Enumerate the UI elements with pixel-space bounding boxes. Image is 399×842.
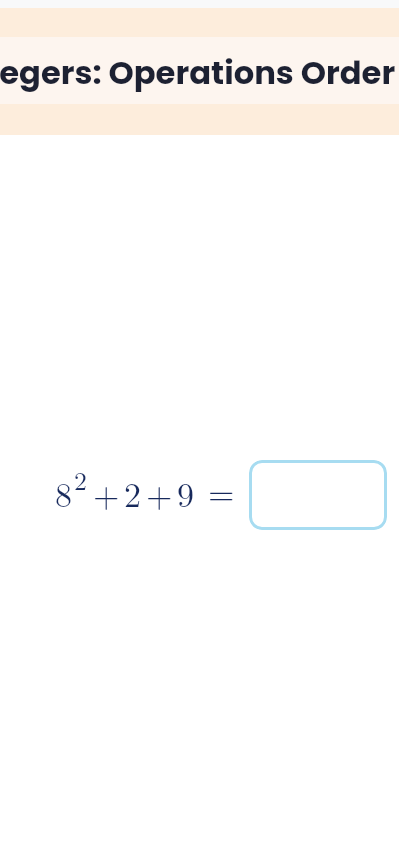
- button[interactable]: Answer input field: [249, 460, 387, 530]
- staticText: 2: [124, 469, 141, 517]
- staticText: Integers: Operations Order: [0, 50, 396, 95]
- staticText: 2: [74, 461, 87, 498]
- staticText: +: [146, 469, 173, 517]
- staticText: =: [208, 467, 235, 515]
- staticText: +: [93, 469, 120, 517]
- staticText: 9: [177, 469, 194, 517]
- staticText: 8: [55, 469, 72, 517]
